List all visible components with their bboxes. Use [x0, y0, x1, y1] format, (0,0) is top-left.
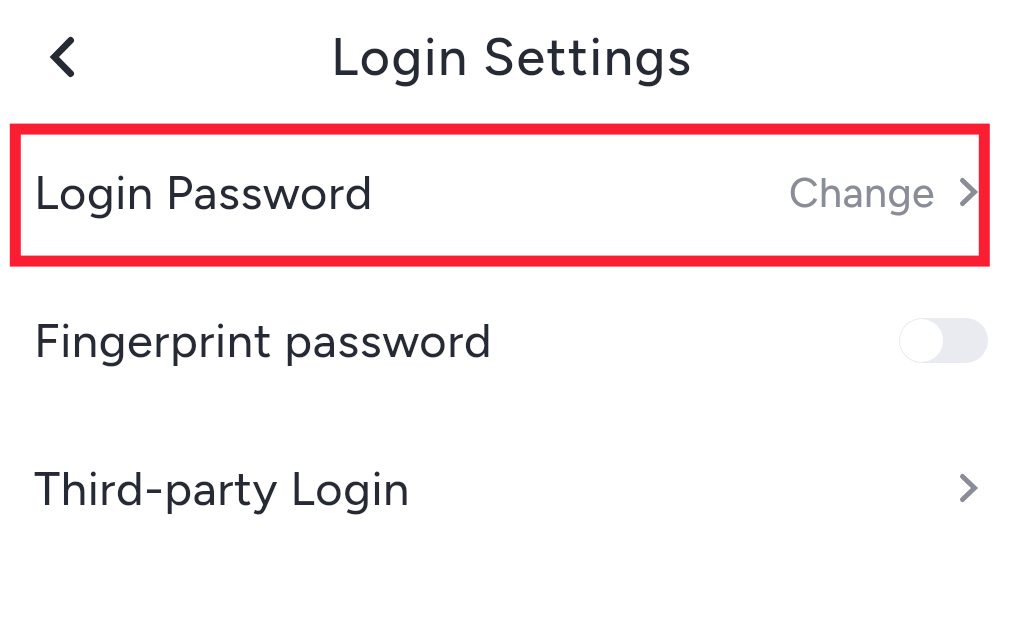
staticText: Login Password — [34, 164, 373, 220]
button[interactable]: Login Password — [0, 118, 1024, 266]
staticText: Change — [789, 168, 936, 217]
staticText: Third-party Login — [34, 460, 410, 516]
staticText: Fingerprint password — [34, 312, 493, 368]
button[interactable]: Fingerprint password, off — [899, 318, 988, 363]
button[interactable]: Fingerprint password — [0, 266, 1024, 414]
staticText: Login Settings — [331, 26, 693, 88]
button[interactable]: Back — [26, 21, 98, 93]
button[interactable]: Third-party Login — [0, 414, 1024, 562]
